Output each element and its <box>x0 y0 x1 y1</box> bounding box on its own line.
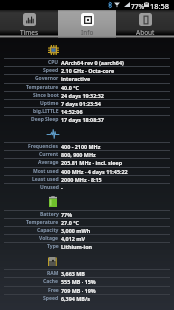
button[interactable]: Battery <box>0 210 174 218</box>
staticText: Current <box>39 151 59 158</box>
staticText: 2.10 GHz · Octa-core <box>61 67 115 74</box>
staticText: Type <box>47 243 59 250</box>
button[interactable]: Governor <box>0 74 174 82</box>
staticText: Deep Sleep <box>31 116 59 123</box>
button[interactable]: Capacity <box>0 226 174 234</box>
staticText: AArch64 rev 0 (aarch64) <box>61 59 124 66</box>
staticText: 77% <box>131 2 145 11</box>
staticText: 40.0 °C <box>61 84 79 91</box>
button[interactable]: Unused <box>0 183 174 191</box>
button[interactable]: Type <box>0 242 174 250</box>
staticText: 24 days 19:32:32 <box>61 92 104 99</box>
staticText: Cache <box>43 278 59 285</box>
button[interactable]: Cache <box>0 277 174 285</box>
button[interactable]: Since boot <box>0 91 174 99</box>
staticText: Since boot <box>33 92 59 99</box>
staticText: Free <box>48 287 59 294</box>
staticText: Frequencies <box>28 143 59 150</box>
staticText: Uptime <box>40 100 59 107</box>
staticText: Temperature <box>26 219 59 226</box>
button[interactable]: Info <box>58 10 116 38</box>
staticText: 709 MB · 19% <box>61 287 96 294</box>
button[interactable]: Temperature <box>0 218 174 226</box>
button[interactable]: Most used <box>0 167 174 175</box>
staticText: 3,000 mWh <box>61 227 91 234</box>
staticText: 14:52:06 <box>61 108 83 115</box>
staticText: 27.0 °C <box>61 219 79 226</box>
staticText: 7 days 01:23:54 <box>61 100 101 107</box>
button[interactable]: CPU <box>0 58 174 66</box>
button[interactable]: Voltage <box>0 234 174 242</box>
staticText: Voltage <box>39 235 59 242</box>
button[interactable]: Speed <box>0 294 174 302</box>
button[interactable]: big.LITTLE <box>0 107 174 115</box>
staticText: 77% <box>61 211 73 218</box>
staticText: - <box>61 184 63 191</box>
staticText: Most used <box>33 168 59 175</box>
staticText: Average <box>38 159 59 166</box>
staticText: 205.81 MHz · incl. sleep <box>61 159 123 166</box>
staticText: 400 MHz · 4 days 11:45:22 <box>61 168 128 175</box>
staticText: Times <box>20 28 39 37</box>
staticText: Battery <box>40 211 59 218</box>
button[interactable]: Current <box>0 150 174 158</box>
button[interactable]: Average <box>0 158 174 166</box>
button[interactable]: Frequencies <box>0 142 174 150</box>
staticText: RAM <box>47 270 59 277</box>
staticText: Info <box>81 28 94 37</box>
staticText: 555 MB · 15% <box>61 278 96 285</box>
staticText: Governor <box>35 75 59 82</box>
staticText: 17 days 18:08:37 <box>61 116 104 123</box>
button[interactable]: About <box>116 10 174 38</box>
staticText: Lithium-ion <box>61 243 93 250</box>
button[interactable]: RAM <box>0 269 174 277</box>
staticText: big.LITTLE <box>33 108 59 115</box>
staticText: CPU <box>48 59 59 66</box>
button[interactable]: Free <box>0 286 174 294</box>
button[interactable]: Times <box>0 10 58 38</box>
button[interactable]: Deep Sleep <box>0 115 174 123</box>
staticText: 400 - 2100 MHz <box>61 143 101 150</box>
button[interactable]: Temperature <box>0 83 174 91</box>
staticText: Speed <box>43 67 59 74</box>
staticText: 800, 900 MHz <box>61 151 96 158</box>
staticText: 3,663 MB <box>61 270 85 277</box>
button[interactable]: Least used <box>0 175 174 183</box>
button[interactable]: Speed <box>0 66 174 74</box>
staticText: 18:58 <box>150 1 169 11</box>
staticText: 6,394 MB/s <box>61 295 90 302</box>
staticText: 4,012 mV <box>61 235 86 242</box>
staticText: Least used <box>32 176 59 183</box>
staticText: Unused <box>40 184 59 191</box>
button[interactable]: Uptime <box>0 99 174 107</box>
staticText: Speed <box>43 295 59 302</box>
staticText: interactive <box>61 75 91 82</box>
staticText: About <box>136 28 155 37</box>
staticText: 2000 MHz · 8:15 <box>61 176 102 183</box>
staticText: Temperature <box>26 84 59 91</box>
staticText: Capacity <box>37 227 59 234</box>
